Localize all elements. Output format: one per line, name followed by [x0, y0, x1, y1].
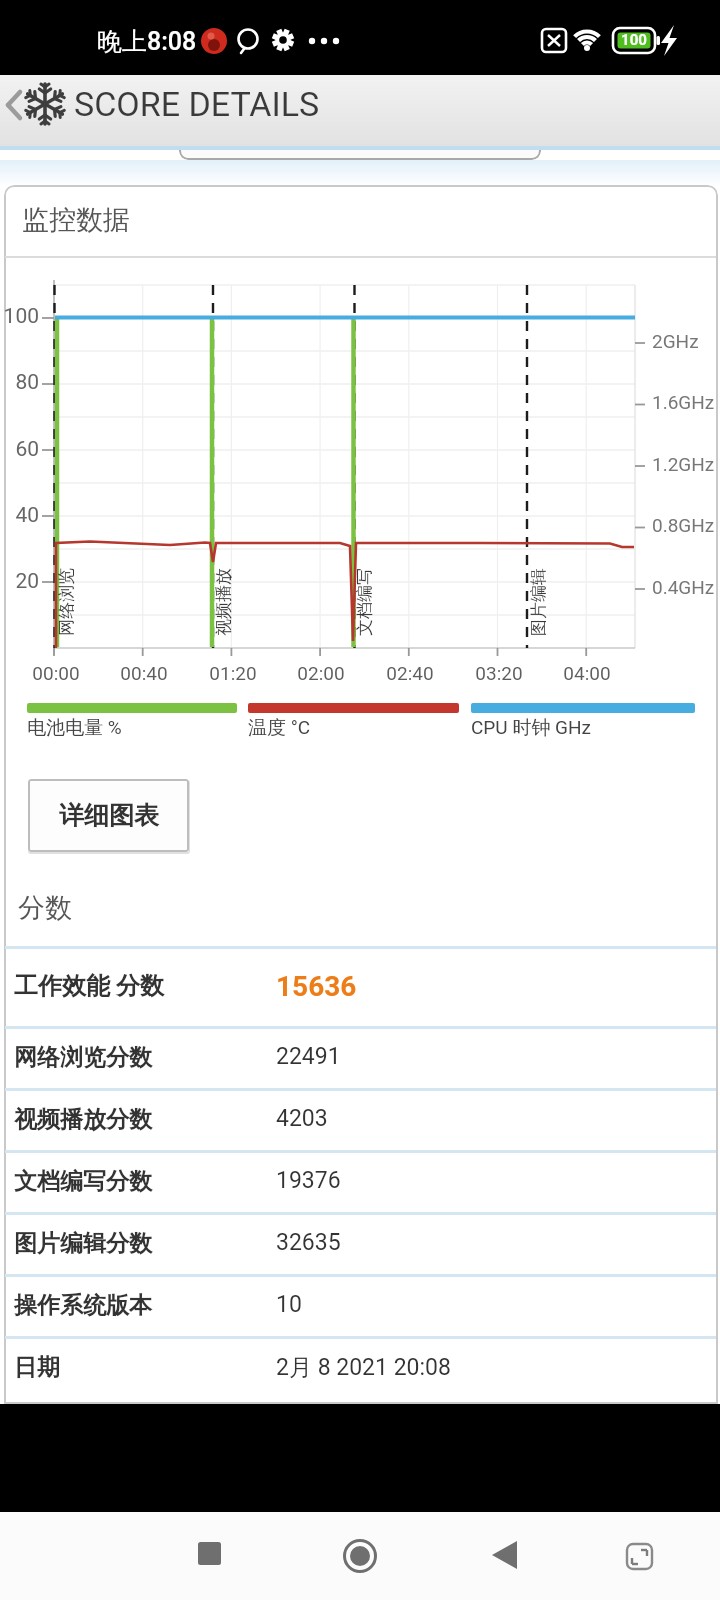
staticText: 1.2GHz — [652, 453, 715, 475]
staticText: 04:00 — [547, 662, 627, 684]
staticText: 4203 — [276, 1105, 328, 1132]
staticText: 图片编辑 — [528, 568, 549, 636]
button[interactable]: 日期 — [5, 1336, 716, 1398]
staticText: 视频播放 — [213, 568, 234, 636]
staticText: 0.8GHz — [652, 514, 715, 536]
staticText: 工作效能 分数 — [14, 971, 164, 1001]
button[interactable]: SCORE DETAILS — [0, 75, 720, 146]
button[interactable]: 图片编辑分数 — [5, 1212, 716, 1274]
staticText: 22491 — [276, 1043, 341, 1070]
staticText: 网络浏览分数 — [14, 1043, 152, 1072]
staticText: 100 — [0, 304, 39, 329]
staticText: 15636 — [276, 970, 357, 1003]
button[interactable]: 文档编写分数 — [5, 1150, 716, 1212]
staticText: 2GHz — [652, 330, 699, 352]
staticText: SCORE DETAILS — [74, 84, 320, 124]
staticText: 详细图表 — [59, 800, 159, 831]
staticText: 温度 °C — [248, 716, 311, 740]
button[interactable]: 网络浏览分数 — [5, 1026, 716, 1088]
staticText: 19376 — [276, 1167, 341, 1194]
button[interactable] — [334, 1528, 386, 1580]
staticText: 1.6GHz — [652, 391, 715, 413]
staticText: 100 — [617, 31, 651, 49]
staticText: 文档编写 — [354, 568, 375, 636]
staticText: 监控数据 — [22, 203, 130, 237]
staticText: 操作系统版本 — [14, 1291, 152, 1320]
staticText: 80 — [0, 370, 39, 395]
staticText: 分数 — [18, 891, 72, 925]
staticText: 60 — [0, 437, 39, 462]
staticText: 0.4GHz — [652, 576, 715, 598]
staticText: 00:00 — [16, 662, 96, 684]
button[interactable] — [480, 1528, 532, 1580]
staticText: 2月 8 2021 20:08 — [276, 1353, 451, 1382]
button[interactable]: 操作系统版本 — [5, 1274, 716, 1336]
staticText: 电池电量 % — [27, 716, 122, 740]
staticText: 文档编写分数 — [14, 1167, 152, 1196]
staticText: 00:40 — [104, 662, 184, 684]
staticText: 40 — [0, 503, 39, 528]
staticText: 视频播放分数 — [14, 1105, 152, 1134]
staticText: 03:20 — [459, 662, 539, 684]
staticText: 02:40 — [370, 662, 450, 684]
staticText: 网络浏览 — [56, 568, 77, 636]
staticText: 20 — [0, 569, 39, 594]
button[interactable]: 工作效能 分数 — [5, 949, 716, 1026]
button[interactable] — [184, 1528, 236, 1580]
staticText: 晚上8:08 — [97, 26, 197, 57]
staticText: 02:00 — [281, 662, 361, 684]
button[interactable]: 详细图表 — [28, 779, 189, 852]
button[interactable]: 视频播放分数 — [5, 1088, 716, 1150]
staticText: 日期 — [14, 1353, 60, 1382]
staticText: 01:20 — [193, 662, 273, 684]
staticText: 10 — [276, 1291, 302, 1318]
staticText: CPU 时钟 GHz — [471, 716, 592, 740]
staticText: 图片编辑分数 — [14, 1229, 152, 1258]
button[interactable] — [614, 1528, 666, 1580]
staticText: 32635 — [276, 1229, 341, 1256]
